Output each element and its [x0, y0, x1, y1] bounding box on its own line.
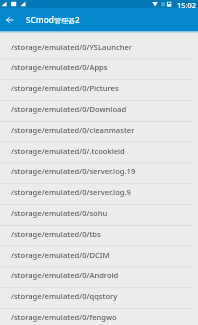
staticText: /storage/emulated/0/Android: [11, 270, 119, 280]
staticText: /storage/emulated/0/YSLauncher: [11, 42, 133, 52]
staticText: /storage/emulated/0/.tcookieid: [11, 146, 125, 156]
button[interactable]: /storage/emulated/0/server.log.19: [0, 163, 198, 183]
staticText: /storage/emulated/0/server.log.9: [11, 187, 131, 197]
staticText: /storage/emulated/0/DCIM: [11, 250, 110, 260]
button[interactable]: /storage/emulated/0/Download: [0, 101, 198, 121]
staticText: SCmod管理器2: [26, 14, 80, 25]
staticText: /storage/emulated/0/fengwo: [11, 312, 117, 322]
button[interactable]: /storage/emulated/0/Apps: [0, 59, 198, 79]
staticText: /storage/emulated/0/tbs: [11, 229, 101, 239]
staticText: /storage/emulated/0/sohu: [11, 208, 108, 218]
button[interactable]: /storage/emulated/0/fengwo: [0, 309, 198, 325]
staticText: /storage/emulated/0/Pictures: [11, 83, 119, 93]
staticText: 15:02: [177, 0, 196, 8]
button[interactable]: /storage/emulated/0/qqstory: [0, 288, 198, 308]
button[interactable]: /storage/emulated/0/.tcookieid: [0, 143, 198, 163]
button[interactable]: /storage/emulated/0/cleanmaster: [0, 122, 198, 142]
button[interactable]: Back: [0, 8, 19, 31]
staticText: /storage/emulated/0/cleanmaster: [11, 125, 135, 135]
button[interactable]: /storage/emulated/0/Android: [0, 267, 198, 287]
button[interactable]: /storage/emulated/0/server.log.9: [0, 184, 198, 204]
staticText: /storage/emulated/0/Download: [11, 104, 127, 114]
button[interactable]: /storage/emulated/0/tbs: [0, 226, 198, 246]
button[interactable]: /storage/emulated/0/DCIM: [0, 247, 198, 267]
button[interactable]: /storage/emulated/0/sohu: [0, 205, 198, 225]
staticText: /storage/emulated/0/qqstory: [11, 291, 118, 301]
staticText: /storage/emulated/0/server.log.19: [11, 166, 136, 176]
staticText: /storage/emulated/0/Apps: [11, 62, 108, 72]
button[interactable]: /storage/emulated/0/YSLauncher: [0, 39, 198, 59]
button[interactable]: /storage/emulated/0/Pictures: [0, 80, 198, 100]
